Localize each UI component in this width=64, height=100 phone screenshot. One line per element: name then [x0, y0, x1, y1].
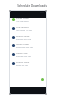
button[interactable]: Add download	[41, 78, 44, 81]
staticText: HD movie 1.2 GB	[16, 29, 32, 32]
button[interactable]: The Sandlot	[9, 26, 47, 35]
staticText: Trailer Clip	[16, 52, 28, 55]
staticText: audio 82 MB	[16, 64, 28, 67]
button[interactable]: Sports Show	[9, 35, 47, 44]
button[interactable]: Sound Track	[9, 61, 47, 70]
staticText: The Sandlot	[16, 26, 29, 29]
staticText: Sports Show	[16, 35, 30, 38]
staticText: Sound Track	[16, 61, 30, 64]
staticText: download 820 MB	[16, 46, 33, 49]
staticText: Schedule Downloads	[0, 4, 64, 8]
staticText: 192 MB video	[16, 20, 29, 23]
button[interactable]: Kartik Tyagi	[9, 17, 47, 26]
staticText: episode 540 MB	[16, 38, 31, 41]
staticText: Movie Night	[16, 43, 30, 46]
button[interactable]: Trailer Clip	[9, 52, 47, 61]
button[interactable]: Movie Night	[9, 43, 47, 52]
staticText: Kartik Tyagi	[16, 17, 29, 20]
staticText: preview 220 MB	[16, 55, 31, 58]
